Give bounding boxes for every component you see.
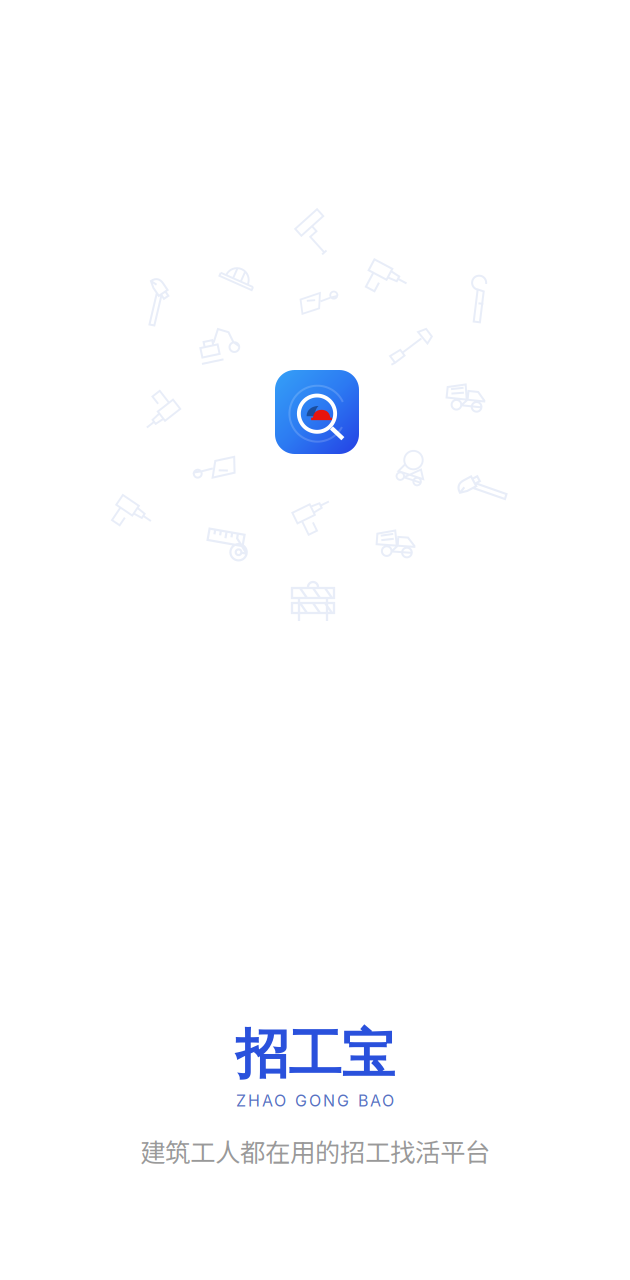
- staticText: ZHAO GONG BAO: [236, 1091, 394, 1110]
- staticText: 建筑工人都在用的招工找活平台: [140, 1132, 490, 1169]
- staticText: 招工宝: [235, 1021, 394, 1088]
